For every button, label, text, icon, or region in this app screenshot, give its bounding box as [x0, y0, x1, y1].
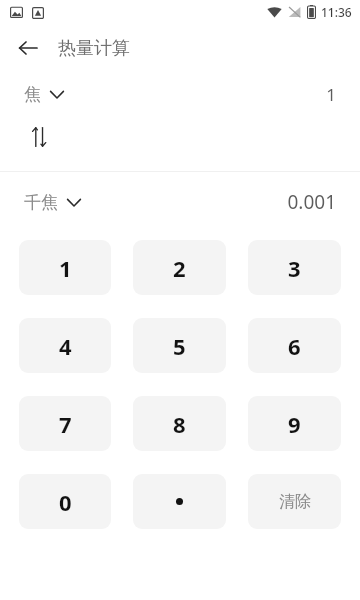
- staticText: 11:36: [321, 4, 352, 20]
- staticText: 0: [59, 487, 72, 517]
- staticText: 4: [59, 331, 72, 361]
- button[interactable]: 2: [133, 240, 226, 295]
- staticText: 清除: [279, 492, 311, 512]
- staticText: 6: [288, 331, 301, 361]
- staticText: 千焦: [24, 192, 58, 213]
- button[interactable]: 清除: [248, 474, 341, 529]
- staticText: 热量计算: [58, 37, 130, 60]
- staticText: 3: [288, 253, 301, 283]
- staticText: 0.001: [287, 189, 336, 215]
- button[interactable]: 4: [19, 318, 111, 373]
- button[interactable]: 5: [133, 318, 226, 373]
- staticText: 1: [59, 253, 72, 283]
- button[interactable]: 7: [19, 396, 111, 451]
- staticText: 2: [173, 253, 186, 283]
- button[interactable]: Swap units: [18, 116, 60, 158]
- button[interactable]: 6: [248, 318, 341, 373]
- staticText: 5: [173, 331, 186, 361]
- button[interactable]: [133, 474, 226, 529]
- button[interactable]: 千焦: [24, 192, 85, 213]
- button[interactable]: Back: [8, 28, 48, 68]
- button[interactable]: 0: [19, 474, 111, 529]
- staticText: 焦: [24, 84, 41, 105]
- staticText: 9: [288, 409, 301, 439]
- button[interactable]: 1: [19, 240, 111, 295]
- button[interactable]: 8: [133, 396, 226, 451]
- staticText: 7: [59, 409, 72, 439]
- button[interactable]: 焦: [24, 84, 68, 105]
- staticText: 1: [326, 83, 336, 106]
- button[interactable]: 9: [248, 396, 341, 451]
- staticText: 8: [173, 409, 186, 439]
- button[interactable]: 3: [248, 240, 341, 295]
